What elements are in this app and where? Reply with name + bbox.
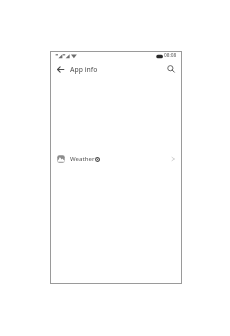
button[interactable]: Search: [163, 61, 179, 77]
staticText: App info: [70, 65, 98, 74]
staticText: Weather: [70, 155, 95, 163]
staticText: 08:08: [164, 52, 177, 59]
button[interactable]: Back: [53, 62, 67, 76]
button[interactable]: Weather: [50, 150, 181, 168]
